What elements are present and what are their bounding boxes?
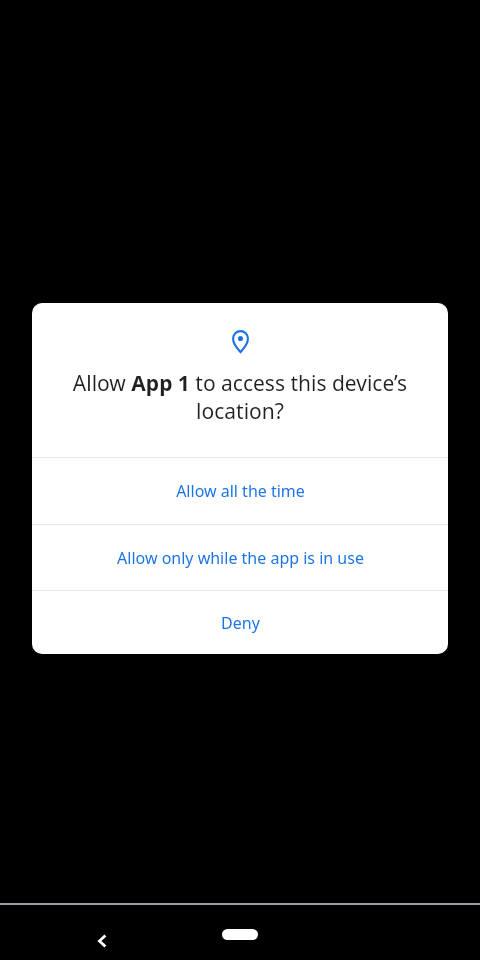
- staticText: Allow only while the app is in use: [117, 547, 364, 569]
- button[interactable]: Allow all the time: [32, 458, 448, 524]
- staticText: Deny: [221, 612, 260, 634]
- button[interactable]: Back: [79, 917, 127, 960]
- button[interactable]: Allow only while the app is in use: [32, 525, 448, 590]
- button[interactable]: Home: [210, 917, 270, 951]
- staticText: Allow all the time: [176, 480, 305, 502]
- button[interactable]: Deny: [32, 591, 448, 654]
- staticText: Allow App 1 to access this device’s loca…: [56, 369, 424, 425]
